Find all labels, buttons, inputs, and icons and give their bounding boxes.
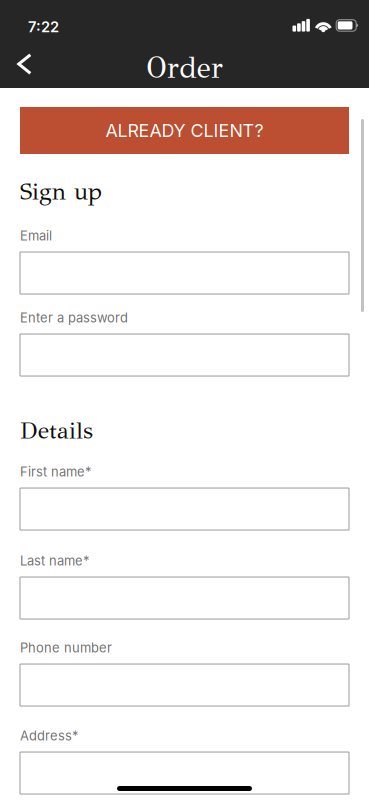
staticText: 7:22	[28, 18, 59, 36]
button[interactable]	[20, 252, 349, 294]
button[interactable]	[20, 577, 349, 619]
button[interactable]	[20, 664, 349, 706]
staticText: Enter a password	[20, 310, 128, 326]
staticText: Email	[20, 228, 52, 244]
staticText: Phone number	[20, 640, 112, 656]
staticText: Address*	[20, 728, 78, 744]
button[interactable]	[20, 752, 349, 794]
staticText: Details	[20, 416, 93, 445]
staticText: Sign up	[20, 177, 102, 206]
button[interactable]: ALREADY CLIENT?	[20, 107, 349, 154]
staticText: Order	[146, 50, 223, 86]
button[interactable]	[20, 488, 349, 530]
button[interactable]: Back	[0, 44, 50, 88]
staticText: Last name*	[20, 553, 89, 569]
button[interactable]	[20, 334, 349, 376]
staticText: ALREADY CLIENT?	[105, 120, 263, 141]
staticText: First name*	[20, 464, 91, 480]
